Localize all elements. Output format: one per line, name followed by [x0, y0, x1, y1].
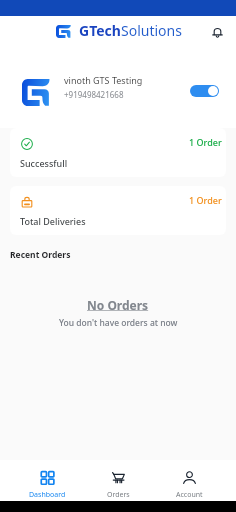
button[interactable]: Account — [154, 460, 225, 501]
staticText: +919498421668 — [64, 89, 124, 100]
button[interactable]: Availability toggle — [190, 85, 219, 97]
button[interactable]: Successfull — [10, 128, 226, 177]
button[interactable]: Dashboard — [11, 460, 83, 501]
button[interactable]: Notifications — [206, 22, 228, 44]
staticText: Solutions — [121, 21, 182, 40]
staticText: Recent Orders — [10, 249, 71, 261]
button[interactable]: Total Deliveries — [10, 186, 226, 235]
staticText: GTech — [79, 21, 121, 40]
staticText: No Orders — [87, 297, 149, 313]
staticText: 1 Order — [189, 194, 222, 206]
staticText: Total Deliveries — [20, 215, 86, 227]
staticText: You don't have orders at now — [59, 317, 178, 329]
staticText: Dashboard — [29, 490, 66, 500]
staticText: 1 Order — [189, 136, 222, 148]
button[interactable]: Orders — [83, 460, 154, 501]
staticText: Successfull — [20, 157, 68, 169]
staticText: vinoth GTS Testing — [64, 74, 143, 86]
staticText: Orders — [107, 490, 130, 500]
staticText: Account — [176, 490, 203, 500]
